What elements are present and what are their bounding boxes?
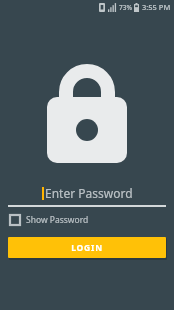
staticText: Enter Password: [45, 185, 133, 201]
button[interactable]: LOGIN: [8, 237, 166, 258]
staticText: LOGIN: [71, 242, 103, 254]
button[interactable]: Show Password: [9, 214, 89, 226]
staticText: 3:55 PM: [142, 2, 171, 12]
staticText: 73%: [119, 3, 132, 12]
button[interactable]: Enter Password: [0, 182, 174, 204]
staticText: Show Password: [26, 214, 89, 226]
